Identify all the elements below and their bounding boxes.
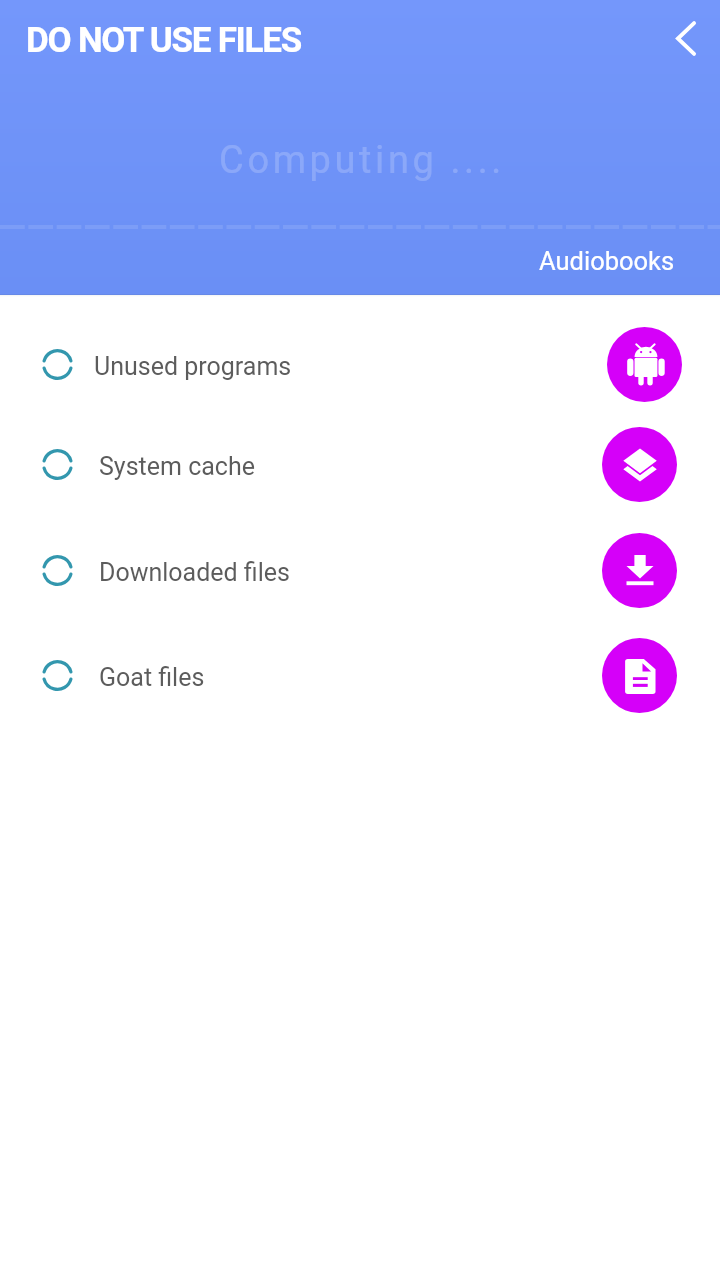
button[interactable]: Goat files (0, 629, 720, 721)
staticText: Goat files (99, 663, 205, 692)
button[interactable]: Back (661, 14, 710, 63)
staticText: Downloaded files (99, 558, 290, 587)
staticText: Computing .... (2, 138, 720, 183)
staticText: Audiobooks (539, 246, 675, 276)
button[interactable]: Downloaded files (0, 524, 720, 616)
button[interactable]: System cache (602, 427, 677, 502)
button[interactable]: Unused programs (607, 327, 682, 402)
staticText: System cache (99, 452, 255, 481)
staticText: DO NOT USE FILES (26, 20, 301, 61)
button[interactable]: Downloaded files (602, 533, 677, 608)
staticText: Unused programs (94, 352, 292, 381)
button[interactable]: System cache (0, 418, 720, 510)
button[interactable]: Unused programs (0, 318, 720, 410)
button[interactable]: Goat files (602, 638, 677, 713)
